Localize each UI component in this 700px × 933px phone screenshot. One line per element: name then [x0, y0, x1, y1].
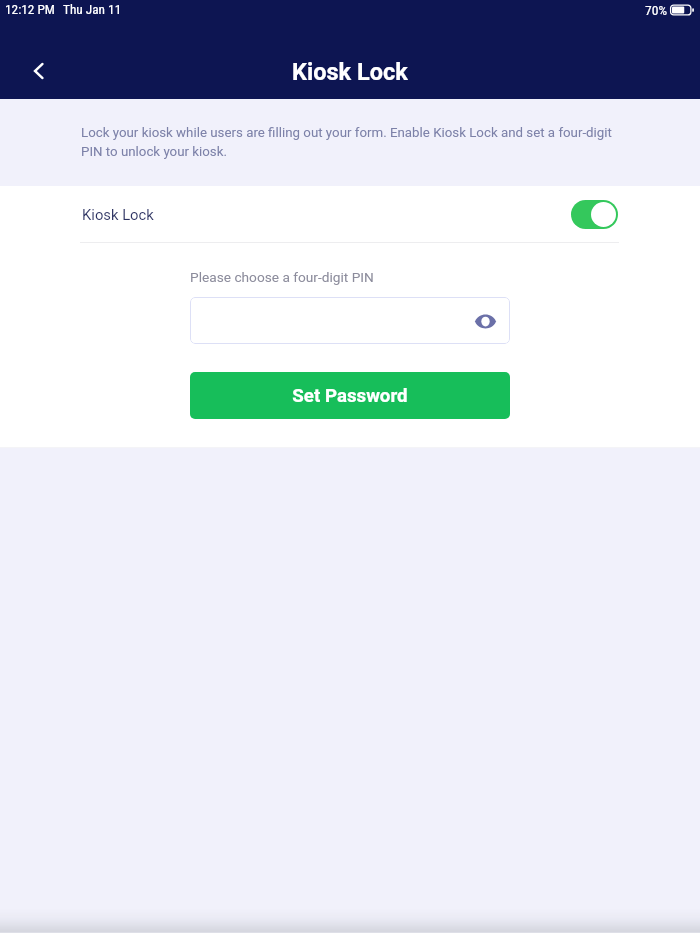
staticText: Set Password — [292, 385, 408, 407]
button[interactable]: Show PIN — [468, 304, 502, 338]
staticText: Lock your kiosk while users are filling … — [81, 125, 617, 159]
staticText: Kiosk Lock — [82, 206, 154, 223]
button[interactable]: Set Password — [190, 372, 510, 419]
staticText: Thu Jan 11 — [63, 2, 122, 18]
staticText: Kiosk Lock — [292, 58, 408, 86]
button[interactable]: Kiosk Lock toggle — [571, 200, 618, 229]
staticText: Please choose a four-digit PIN — [190, 269, 374, 285]
staticText: 12:12 PM — [5, 2, 55, 18]
button[interactable]: Show PIN — [190, 297, 510, 344]
button[interactable]: Kiosk Lock — [0, 186, 700, 242]
button[interactable]: Back — [11, 43, 67, 99]
staticText: 70% — [645, 2, 668, 18]
